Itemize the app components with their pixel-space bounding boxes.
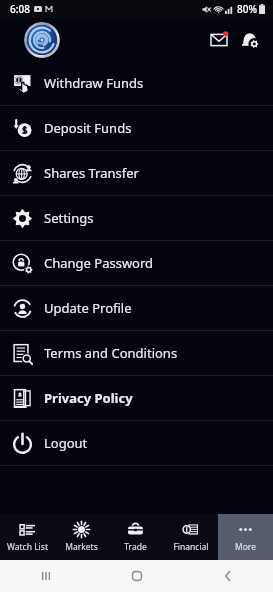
staticText: Financial — [173, 541, 209, 553]
staticText: 6:08 — [10, 2, 30, 16]
button[interactable]: Back — [182, 560, 273, 592]
button[interactable]: Home — [91, 560, 182, 592]
staticText: Watch List — [7, 541, 48, 553]
staticText: Privacy Policy — [44, 389, 133, 407]
button[interactable]: Shares Transfer — [0, 151, 273, 195]
staticText: 80% — [237, 2, 257, 16]
button[interactable]: Withdraw Funds — [0, 61, 273, 105]
staticText: Shares Transfer — [44, 164, 139, 182]
button[interactable]: Change Password — [0, 241, 273, 285]
staticText: Update Profile — [44, 299, 132, 317]
button[interactable]: App logo — [24, 22, 60, 58]
staticText: Logout — [44, 434, 88, 452]
staticText: Terms and Conditions — [44, 344, 178, 362]
staticText: Settings — [44, 209, 94, 227]
button[interactable]: Watch List — [0, 514, 54, 560]
staticText: Markets — [65, 541, 98, 553]
button[interactable]: Recent apps — [0, 560, 91, 592]
button[interactable]: More — [218, 514, 273, 560]
staticText: Trade — [124, 541, 147, 553]
staticText: Deposit Funds — [44, 119, 132, 137]
button[interactable]: Trade — [108, 514, 163, 560]
button[interactable]: Update Profile — [0, 286, 273, 330]
staticText: More — [235, 541, 256, 553]
button[interactable]: Deposit Funds — [0, 106, 273, 150]
button[interactable]: Logout — [0, 421, 273, 465]
button[interactable]: Markets — [54, 514, 108, 560]
button[interactable]: Financial — [163, 514, 218, 560]
staticText: Withdraw Funds — [44, 74, 144, 92]
button[interactable]: Settings — [0, 196, 273, 240]
button[interactable]: Privacy Policy — [0, 376, 273, 420]
button[interactable]: Terms and Conditions — [0, 331, 273, 375]
staticText: Change Password — [44, 254, 154, 272]
button[interactable]: Messages — [207, 27, 233, 53]
button[interactable]: Notification settings — [237, 27, 263, 53]
